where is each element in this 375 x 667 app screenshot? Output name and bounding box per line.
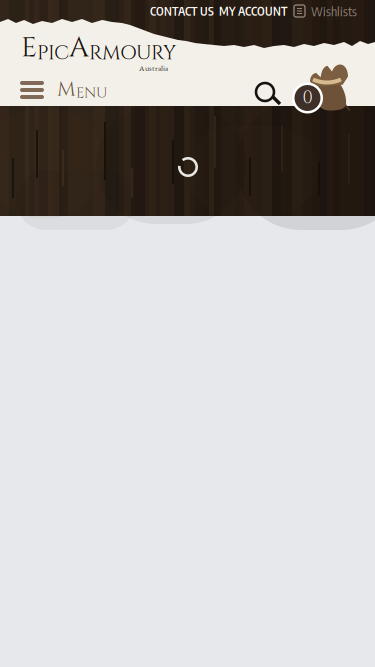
button[interactable]: Epic Armoury Australia — home — [21, 29, 176, 73]
staticText: PIC — [37, 40, 69, 67]
button[interactable]: Wishlists — [287, 0, 375, 24]
staticText: MY ACCOUNT — [219, 4, 287, 18]
staticText: 0 — [302, 86, 312, 110]
button[interactable]: Cart, 0 items — [294, 52, 348, 104]
staticText: CONTACT US — [150, 4, 214, 18]
staticText: RMOURY — [89, 40, 176, 67]
staticText: Australia — [139, 63, 168, 73]
button[interactable]: CONTACT US — [145, 0, 214, 24]
button[interactable]: MY ACCOUNT — [214, 0, 287, 24]
button[interactable]: Search — [250, 76, 280, 106]
staticText: A — [69, 29, 89, 67]
staticText: Wishlists — [311, 3, 357, 19]
staticText: M — [57, 76, 76, 103]
button[interactable]: M — [20, 71, 116, 109]
staticText: ENU — [76, 83, 108, 103]
staticText: E — [21, 29, 37, 67]
